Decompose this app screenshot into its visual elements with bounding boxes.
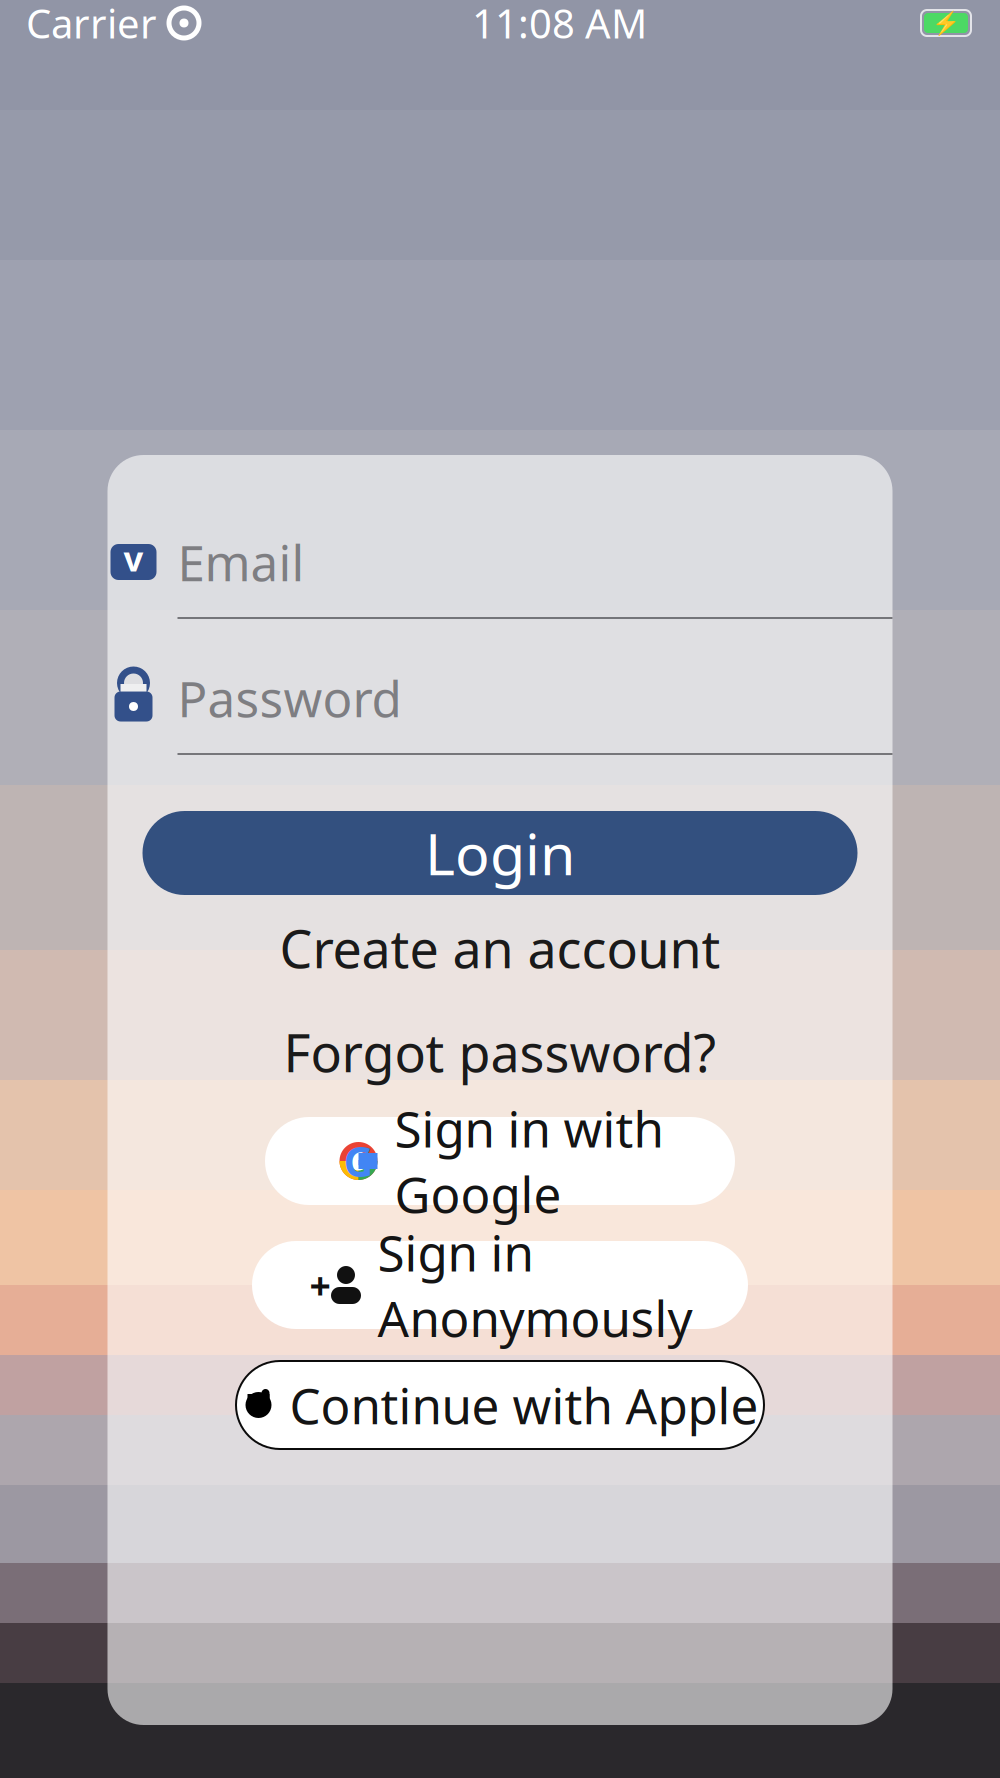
staticText: v xyxy=(123,535,143,581)
staticText: Login xyxy=(425,815,575,891)
staticText: + xyxy=(309,1260,330,1310)
staticText: Sign in Anonymously xyxy=(377,1219,692,1350)
staticText: Sign in with Google xyxy=(394,1095,663,1226)
button[interactable]: + xyxy=(252,1241,748,1329)
staticText: G xyxy=(343,1134,373,1188)
button[interactable]: Continue with Apple xyxy=(236,1361,764,1449)
button[interactable]: Create an account xyxy=(157,917,842,979)
staticText: Forgot password? xyxy=(283,1017,716,1087)
button[interactable]: Forgot password? xyxy=(157,1021,842,1083)
staticText: Email xyxy=(177,529,304,595)
button[interactable]: G xyxy=(265,1117,735,1205)
staticText: Carrier xyxy=(26,0,157,49)
staticText: ⚡ xyxy=(932,10,960,36)
staticText: Continue with Apple xyxy=(289,1372,758,1438)
button[interactable]: Login xyxy=(142,811,857,895)
staticText: 11:08 AM xyxy=(472,0,647,49)
staticText: Create an account xyxy=(279,913,720,983)
staticText: Password xyxy=(177,665,401,731)
